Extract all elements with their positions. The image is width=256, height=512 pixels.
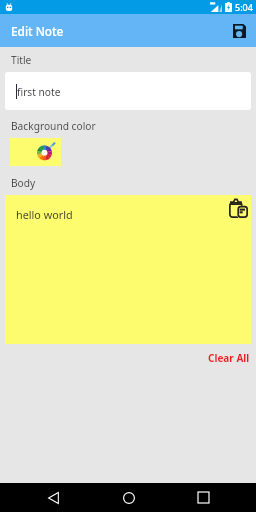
button[interactable]: Save note: [229, 20, 251, 42]
staticText: Title: [11, 53, 32, 67]
staticText: Background color: [11, 119, 96, 133]
button[interactable]: Paste from clipboard: [227, 197, 249, 219]
staticText: hello world: [16, 207, 73, 222]
staticText: Clear All: [208, 351, 250, 365]
staticText: 5:04: [235, 1, 253, 13]
button[interactable]: Clear All: [208, 351, 256, 365]
staticText: Edit Note: [11, 23, 64, 39]
button[interactable]: Recent apps: [189, 483, 218, 512]
staticText: Body: [11, 176, 36, 190]
button[interactable]: hello world: [5, 195, 251, 344]
button[interactable]: Choose background colour: [10, 138, 61, 166]
button[interactable]: Back: [39, 483, 68, 512]
button[interactable]: first note: [5, 72, 251, 110]
staticText: first note: [17, 85, 61, 99]
button[interactable]: Home: [114, 483, 143, 512]
